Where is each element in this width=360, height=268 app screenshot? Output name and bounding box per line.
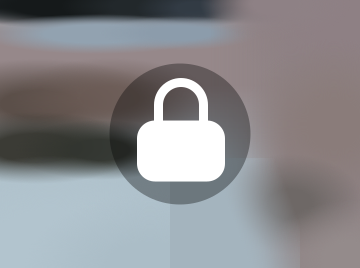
button[interactable]: Content locked xyxy=(125,74,235,194)
